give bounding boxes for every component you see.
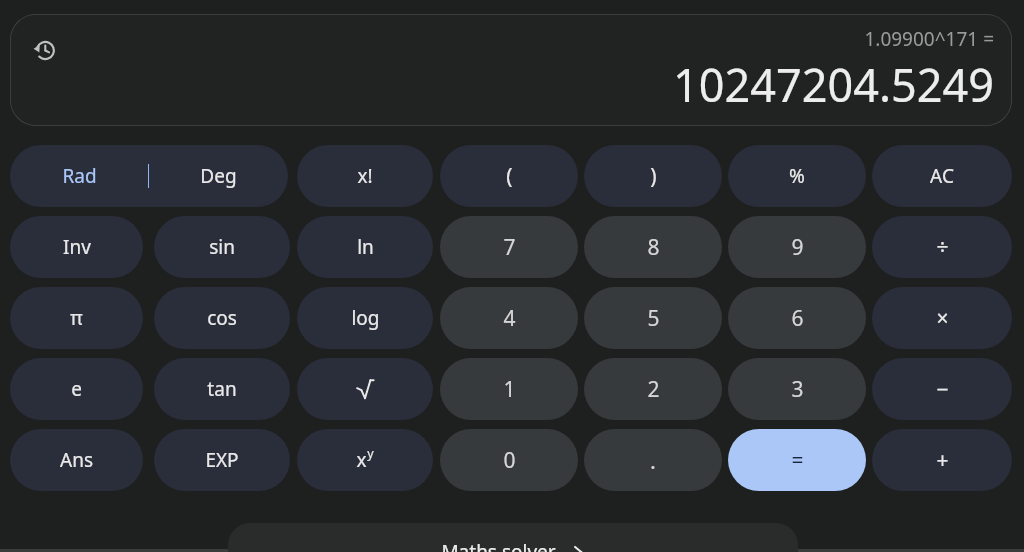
staticText: sin	[209, 234, 235, 260]
button[interactable]: 6	[728, 287, 866, 349]
staticText: 0	[503, 446, 516, 475]
button[interactable]: sin	[154, 216, 290, 278]
staticText: Ans	[60, 447, 93, 473]
button[interactable]: Deg	[149, 145, 288, 207]
button[interactable]: 5	[584, 287, 722, 349]
button[interactable]: =	[728, 429, 866, 491]
staticText: 8	[647, 233, 660, 262]
staticText: +	[936, 446, 949, 475]
staticText: e	[71, 376, 82, 402]
staticText: 6	[791, 304, 804, 333]
staticText: 1	[503, 375, 516, 404]
staticText: )	[650, 162, 657, 191]
button[interactable]: π	[10, 287, 143, 349]
staticText: 5	[647, 304, 660, 333]
button[interactable]: (	[440, 145, 578, 207]
staticText: ln	[357, 234, 374, 260]
button[interactable]: 9	[728, 216, 866, 278]
staticText: Inv	[63, 234, 91, 260]
button[interactable]: x	[297, 429, 433, 491]
button[interactable]: ×	[872, 287, 1012, 349]
button[interactable]: ln	[297, 216, 433, 278]
button[interactable]: 1	[440, 358, 578, 420]
staticText: 7	[503, 233, 516, 262]
button[interactable]: log	[297, 287, 433, 349]
button[interactable]: 4	[440, 287, 578, 349]
button[interactable]: 7	[440, 216, 578, 278]
staticText: %	[789, 163, 805, 189]
button[interactable]: .	[584, 429, 722, 491]
staticText: Rad	[62, 163, 97, 189]
staticText: cos	[207, 305, 237, 331]
button[interactable]: square root	[297, 358, 433, 420]
button[interactable]: −	[872, 358, 1012, 420]
staticText: 2	[647, 375, 660, 404]
button[interactable]: Inv	[10, 216, 143, 278]
staticText: 9	[791, 233, 804, 262]
staticText: x!	[357, 163, 373, 189]
staticText: y	[367, 445, 374, 462]
staticText: EXP	[205, 447, 239, 473]
staticText: x	[356, 447, 367, 473]
button[interactable]: Ans	[10, 429, 143, 491]
button[interactable]: e	[10, 358, 143, 420]
staticText: 1.09900^171 =	[864, 26, 994, 52]
button[interactable]: EXP	[154, 429, 290, 491]
button[interactable]: AC	[872, 145, 1012, 207]
button[interactable]: Maths solver	[228, 523, 798, 552]
button[interactable]: ÷	[872, 216, 1012, 278]
staticText: (	[506, 162, 513, 191]
staticText: AC	[930, 163, 954, 189]
button[interactable]: 8	[584, 216, 722, 278]
staticText: −	[936, 375, 949, 404]
button[interactable]: tan	[154, 358, 290, 420]
staticText: 10247204.5249	[673, 54, 994, 115]
staticText: Maths solver	[441, 539, 556, 552]
button[interactable]: 2	[584, 358, 722, 420]
button[interactable]: History	[22, 28, 66, 72]
staticText: ×	[936, 304, 949, 333]
staticText: 3	[791, 375, 804, 404]
button[interactable]: cos	[154, 287, 290, 349]
button[interactable]: 0	[440, 429, 578, 491]
staticText: =	[791, 446, 804, 475]
button[interactable]: +	[872, 429, 1012, 491]
button[interactable]: x!	[297, 145, 433, 207]
button[interactable]: 3	[728, 358, 866, 420]
staticText: .	[650, 445, 656, 475]
button[interactable]: %	[728, 145, 866, 207]
button[interactable]: )	[584, 145, 722, 207]
staticText: 4	[503, 304, 516, 333]
staticText: π	[70, 305, 83, 331]
staticText: tan	[207, 376, 237, 402]
staticText: ÷	[936, 233, 949, 262]
button[interactable]: Rad	[10, 145, 149, 207]
staticText: log	[351, 305, 380, 331]
staticText: Deg	[200, 163, 237, 189]
